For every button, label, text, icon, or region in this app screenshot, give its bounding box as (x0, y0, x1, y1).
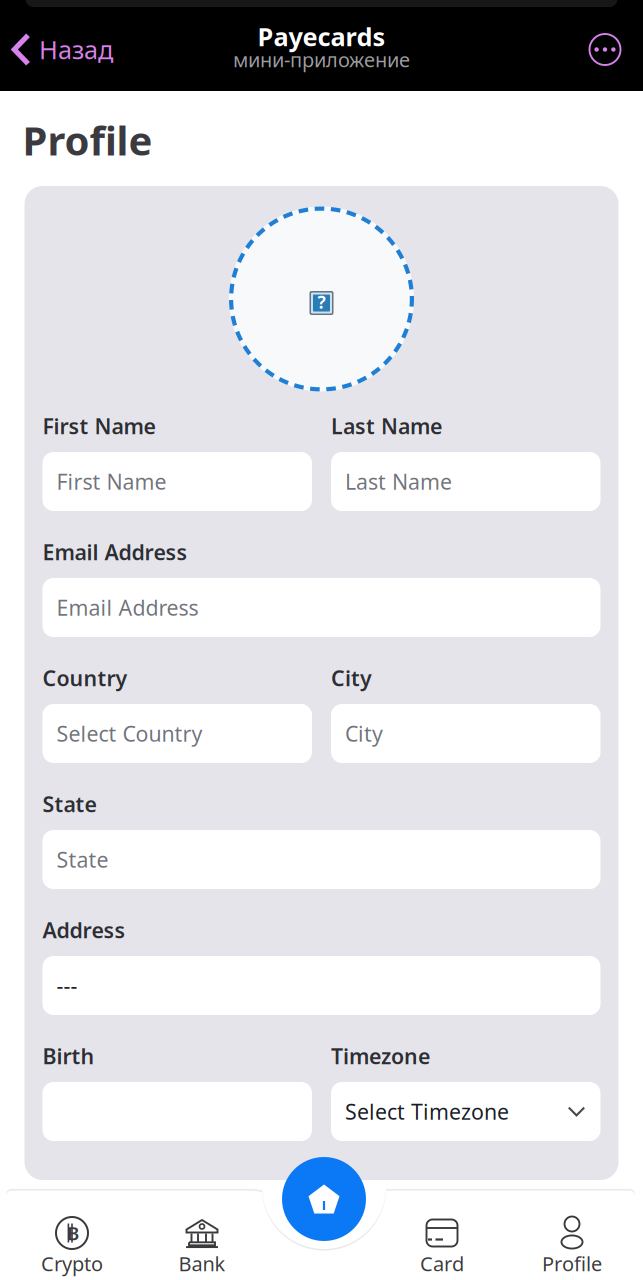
staticText: Email Address (42, 538, 187, 566)
staticText: Payecards (257, 20, 385, 53)
staticText: Last Name (331, 412, 442, 440)
button[interactable]: More options (588, 32, 643, 66)
staticText: City (345, 719, 383, 748)
staticText: B (67, 1221, 79, 1245)
staticText: Email Address (56, 593, 198, 622)
button[interactable]: B (7, 1189, 137, 1279)
staticText: First Name (56, 467, 166, 496)
button[interactable]: Bank (137, 1189, 267, 1279)
button[interactable]: Select Timezone (331, 1082, 600, 1141)
staticText: Country (42, 664, 127, 692)
button[interactable]: Email Address (42, 578, 600, 637)
staticText: мини-приложение (233, 46, 410, 73)
staticText: Select Timezone (345, 1097, 509, 1126)
staticText: Bank (178, 1250, 225, 1277)
button[interactable]: Select Country (42, 704, 312, 763)
staticText: First Name (42, 412, 155, 440)
staticText: Card (420, 1250, 464, 1277)
staticText: Last Name (345, 467, 452, 496)
staticText: Birth (42, 1042, 94, 1070)
button[interactable]: Card (377, 1189, 507, 1279)
button[interactable]: Profile (507, 1189, 637, 1279)
staticText: ? (317, 290, 325, 313)
staticText: Profile (542, 1250, 602, 1277)
staticText: City (331, 664, 372, 692)
button[interactable]: Profile photo (229, 206, 414, 391)
staticText: Address (42, 916, 125, 944)
button[interactable]: State (42, 830, 600, 889)
staticText: Profile (22, 113, 152, 166)
button[interactable]: Home (282, 1157, 366, 1241)
staticText: State (42, 790, 96, 818)
staticText: State (56, 845, 108, 874)
button[interactable]: City (331, 704, 600, 763)
button[interactable]: --- (42, 956, 600, 1015)
staticText: Crypto (41, 1250, 103, 1277)
staticText: Назад (39, 33, 113, 66)
button[interactable]: First Name (42, 452, 312, 511)
staticText: Timezone (331, 1042, 430, 1070)
button[interactable]: Last Name (331, 452, 600, 511)
staticText: --- (56, 971, 77, 1000)
staticText: Select Country (56, 719, 202, 748)
button[interactable]: Назад (0, 18, 125, 80)
